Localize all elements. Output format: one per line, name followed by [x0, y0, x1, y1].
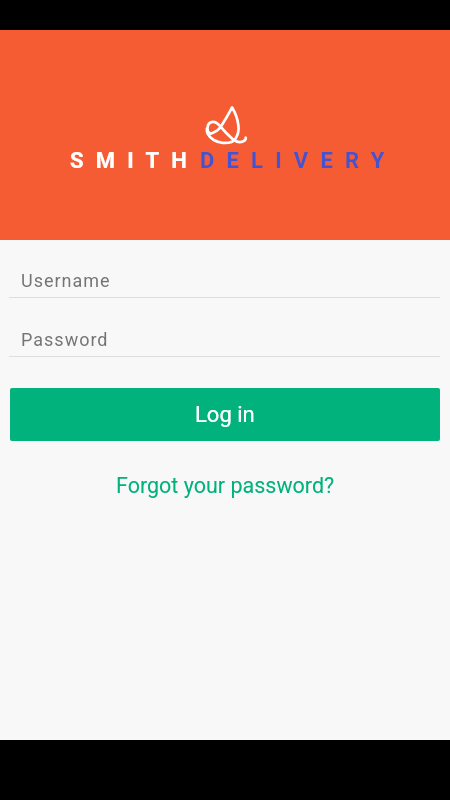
other: Smith Delivery logo: [200, 100, 252, 152]
button[interactable]: Log in: [10, 388, 440, 441]
staticText: SMITH: [70, 148, 200, 174]
staticText: Log in: [195, 402, 255, 428]
staticText: Username: [21, 270, 111, 291]
staticText: Forgot your password?: [116, 473, 335, 498]
staticText: DELIVERY: [200, 148, 397, 174]
button[interactable]: Password: [0, 327, 450, 356]
button[interactable]: Forgot your password?: [104, 468, 347, 503]
staticText: Password: [21, 329, 109, 350]
button[interactable]: Username: [0, 268, 450, 297]
